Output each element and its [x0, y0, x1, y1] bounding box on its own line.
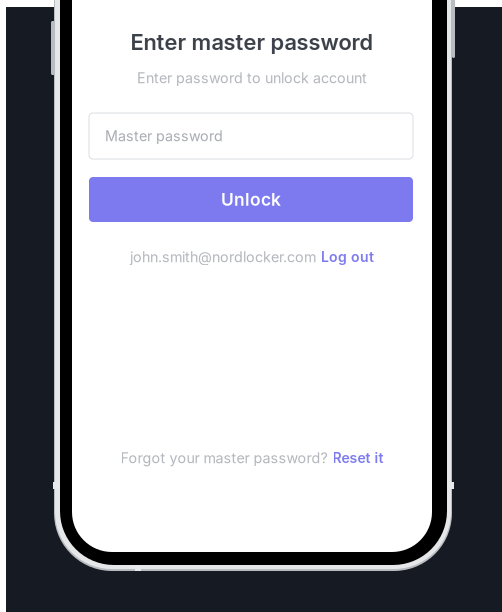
staticText: Forgot your master password?: [120, 449, 327, 467]
staticText: Unlock: [221, 189, 281, 210]
staticText: Reset it: [332, 449, 383, 466]
staticText: Log out: [321, 248, 374, 265]
staticText: john.smith@nordlocker.com: [130, 248, 316, 266]
staticText: Enter password to unlock account: [137, 69, 367, 87]
staticText: Enter master password: [130, 29, 373, 55]
staticText: Master password: [105, 127, 223, 145]
button[interactable]: Reset it: [332, 449, 383, 466]
button[interactable]: Log out: [321, 248, 374, 265]
button[interactable]: Unlock: [89, 177, 413, 222]
